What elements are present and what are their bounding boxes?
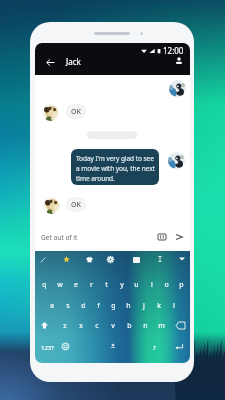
button[interactable]: i [144,280,159,290]
button[interactable]: Contact avatar [42,104,59,121]
staticText: p [179,280,184,290]
staticText: 12:00 [163,45,184,56]
button[interactable]: j [136,301,151,311]
staticText: a [50,301,54,311]
staticText: t [105,280,108,290]
button[interactable]: Switch keyboard [157,232,167,242]
button[interactable]: OK [66,104,86,119]
button[interactable]: z [56,321,73,331]
button[interactable]: h [121,301,136,311]
staticText: Today I'm very glad to see a movie with … [76,154,156,183]
button[interactable]: Send [174,232,184,242]
staticText: w [57,280,63,290]
button[interactable]: s [60,301,76,311]
staticText: h [126,301,131,311]
staticText: OK [71,107,81,117]
staticText: Get out of it [41,233,78,242]
staticText: v [111,321,115,331]
staticText: u [134,280,139,290]
staticText: j [143,301,145,311]
staticText: OK [71,200,81,210]
staticText: e [74,280,78,290]
button[interactable]: o [159,280,174,290]
button[interactable]: g [106,301,121,311]
button[interactable]: e [68,280,84,290]
button[interactable]: x [73,321,89,331]
button[interactable]: r [84,280,99,290]
staticText: 123? [41,344,54,352]
staticText: k [157,301,161,311]
staticText: d [81,301,86,311]
button[interactable]: v [105,321,121,331]
button[interactable]: b [121,321,137,331]
staticText: f [97,301,100,311]
button[interactable]: l [166,301,181,311]
staticText: z [63,321,67,331]
button[interactable]: Emoji [61,342,70,351]
button[interactable]: My avatar [169,80,186,97]
staticText: ? [153,344,156,352]
button[interactable]: Today I'm very glad to see a movie with … [71,149,159,185]
button[interactable]: k [151,301,166,311]
staticText: g [111,301,116,311]
staticText: x [79,321,83,331]
button[interactable]: u [129,280,144,290]
staticText: c [95,321,99,331]
staticText: i [151,280,153,290]
button[interactable]: OK [66,197,86,212]
staticText: q [42,280,47,290]
button[interactable]: a [44,301,60,311]
button[interactable]: n [137,321,153,331]
button[interactable]: My avatar [168,152,185,169]
button[interactable]: q [36,280,52,290]
button[interactable]: c [89,321,105,331]
button[interactable]: t [99,280,114,290]
button[interactable]: p [174,280,189,290]
staticText: Jack [66,56,81,67]
staticText: l [173,301,175,311]
button[interactable]: Contact avatar [43,197,60,214]
staticText: b [127,321,132,331]
staticText: m [158,321,165,331]
button[interactable]: Back [43,55,57,69]
button[interactable]: Contact profile [172,54,186,68]
button[interactable]: w [52,280,68,290]
staticText: n [143,321,148,331]
staticText: o [164,280,169,290]
button[interactable]: m [153,321,169,331]
button[interactable]: d [76,301,91,311]
staticText: r [90,280,93,290]
button[interactable]: f [91,301,106,311]
staticText: y [120,280,124,290]
button[interactable]: y [114,280,129,290]
button[interactable]: Clipboard [133,257,140,263]
staticText: s [66,301,70,311]
